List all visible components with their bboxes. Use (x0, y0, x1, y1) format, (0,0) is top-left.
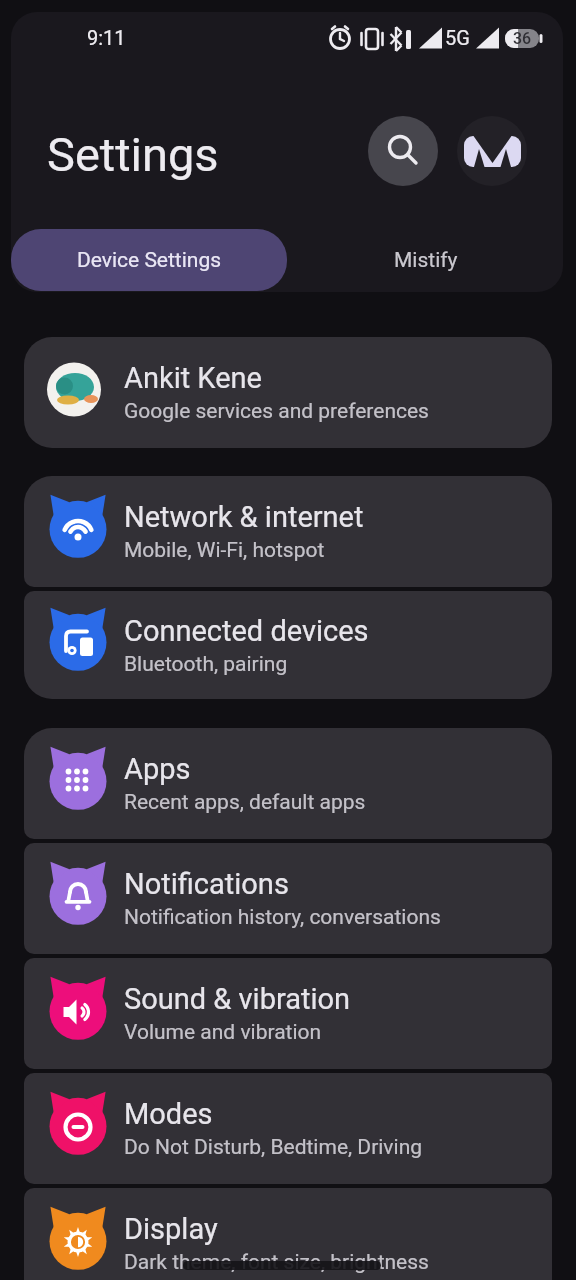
button[interactable]: Connected devices (24, 591, 552, 699)
staticText: Apps (124, 752, 191, 786)
staticText: Volume and vibration (124, 1020, 322, 1045)
staticText: Connected devices (124, 614, 369, 648)
staticText: 9:11 (87, 26, 126, 49)
button[interactable]: Sound & vibration (24, 958, 552, 1069)
staticText: Google services and preferences (124, 399, 429, 424)
staticText: Mobile, Wi-Fi, hotspot (124, 538, 325, 563)
button[interactable] (457, 116, 527, 186)
staticText: Ankit Kene (124, 361, 262, 395)
staticText: Do Not Disturb, Bedtime, Driving (124, 1135, 423, 1160)
button[interactable]: Apps (24, 728, 552, 839)
button[interactable]: Mistify (287, 229, 565, 291)
button[interactable]: Display (24, 1188, 552, 1280)
staticText: Bluetooth, pairing (124, 652, 288, 677)
staticText: Notifications (124, 867, 289, 901)
staticText: Network & internet (124, 500, 364, 534)
staticText: Dark theme, font size, brightness (124, 1250, 429, 1275)
staticText: Device Settings (77, 248, 222, 273)
staticText: Sound & vibration (124, 982, 351, 1016)
button[interactable]: Device Settings (11, 229, 287, 291)
staticText: Modes (124, 1097, 213, 1131)
staticText: Notification history, conversations (124, 905, 441, 930)
button[interactable]: Ankit Kene (24, 337, 552, 448)
staticText: Recent apps, default apps (124, 790, 366, 815)
staticText: 36 (509, 29, 535, 48)
button[interactable]: Network & internet (24, 476, 552, 587)
staticText: Mistify (394, 248, 458, 273)
staticText: 5G (445, 26, 470, 49)
staticText: Display (124, 1212, 218, 1246)
button[interactable]: Notifications (24, 843, 552, 954)
button[interactable]: Modes (24, 1073, 552, 1184)
staticText: Settings (47, 127, 219, 182)
button[interactable] (368, 116, 438, 186)
